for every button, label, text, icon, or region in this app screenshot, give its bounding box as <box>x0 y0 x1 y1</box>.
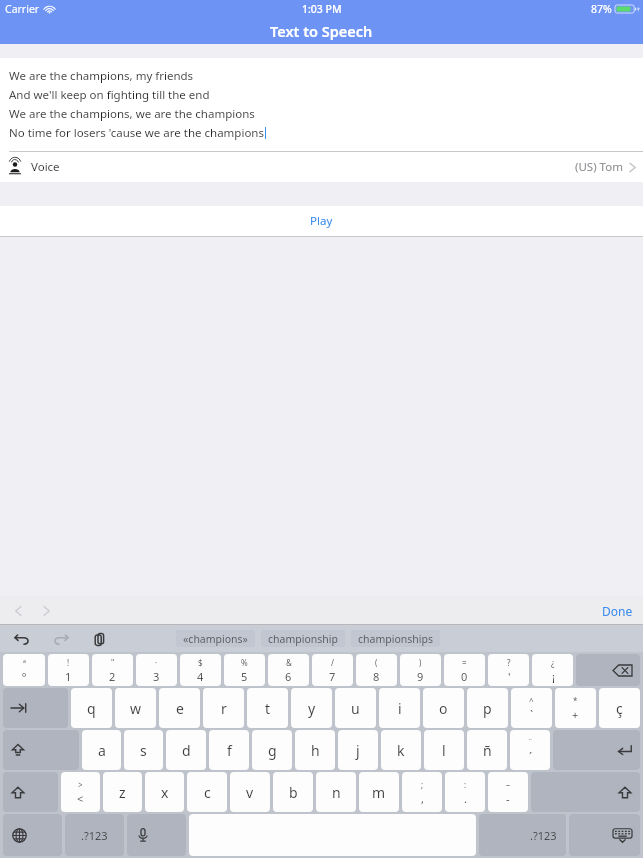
button[interactable]: > <box>61 772 100 812</box>
button[interactable]: c <box>187 772 227 812</box>
button[interactable]: ^ <box>511 688 552 728</box>
staticText: 4 <box>197 669 204 684</box>
button[interactable]: q <box>71 688 112 728</box>
button[interactable]: Shift <box>3 772 58 812</box>
button[interactable]: o <box>423 688 464 728</box>
staticText: ` <box>530 707 534 722</box>
button[interactable]: Paste <box>90 629 110 649</box>
button[interactable]: j <box>338 730 378 770</box>
button[interactable]: ¨ <box>510 730 550 770</box>
button[interactable]: ç <box>599 688 640 728</box>
button[interactable]: / <box>312 654 353 686</box>
button[interactable]: w <box>115 688 156 728</box>
button[interactable]: ; <box>402 772 442 812</box>
staticText: 1:03 PM <box>302 2 342 16</box>
staticText: ; <box>421 779 424 790</box>
staticText: .?123 <box>530 828 557 843</box>
button[interactable]: % <box>224 654 265 686</box>
other: Caps lock <box>3 730 79 770</box>
button[interactable]: v <box>230 772 270 812</box>
staticText: ( <box>375 657 378 668</box>
button[interactable]: k <box>381 730 421 770</box>
other: Tab <box>3 688 68 728</box>
button[interactable]: y <box>291 688 332 728</box>
staticText: + <box>572 707 579 722</box>
button[interactable]: b <box>273 772 313 812</box>
button[interactable]: Play <box>0 206 643 236</box>
staticText: ? <box>507 657 511 668</box>
button[interactable]: s <box>124 730 163 770</box>
button[interactable]: ! <box>48 654 89 686</box>
button[interactable]: Dictate <box>127 814 186 856</box>
button[interactable]: l <box>424 730 464 770</box>
staticText: < <box>77 791 84 806</box>
button[interactable]: Tab <box>3 688 68 728</box>
button[interactable]: ( <box>356 654 397 686</box>
button[interactable]: e <box>159 688 200 728</box>
button[interactable]: Undo <box>12 629 32 649</box>
button[interactable]: g <box>252 730 292 770</box>
other: Backspace <box>576 654 640 686</box>
staticText: z <box>119 783 126 802</box>
button[interactable]: Voice <box>0 152 643 182</box>
button[interactable]: ) <box>400 654 441 686</box>
button[interactable]: Return <box>553 730 640 770</box>
button[interactable]: ¿ <box>532 654 573 686</box>
button[interactable]: Next keyboard <box>3 814 62 856</box>
button[interactable]: & <box>268 654 309 686</box>
button[interactable]: a <box>82 730 121 770</box>
button[interactable]: Hide keyboard <box>569 814 640 856</box>
button[interactable]: ? <box>488 654 529 686</box>
button[interactable]: d <box>166 730 206 770</box>
button[interactable]: Previous field <box>6 599 30 623</box>
staticText: a <box>98 741 106 760</box>
button[interactable]: x <box>145 772 184 812</box>
button[interactable]: * <box>555 688 596 728</box>
other: Hide keyboard <box>569 814 640 856</box>
staticText: And we'll keep on fighting till the end <box>9 87 210 103</box>
button[interactable]: : <box>445 772 485 812</box>
staticText: 9 <box>417 669 424 684</box>
button[interactable]: p <box>467 688 508 728</box>
button[interactable]: m <box>359 772 399 812</box>
button[interactable]: .?123 <box>479 814 566 856</box>
button[interactable]: r <box>203 688 244 728</box>
button[interactable]: Redo <box>51 629 71 649</box>
button[interactable]: " <box>92 654 133 686</box>
button[interactable]: Next field <box>34 599 58 623</box>
button[interactable]: – <box>488 772 528 812</box>
staticText: ^ <box>529 695 534 706</box>
button[interactable]: ñ <box>467 730 507 770</box>
staticText: - <box>506 791 510 806</box>
staticText: > <box>78 779 83 790</box>
button[interactable]: · <box>136 654 177 686</box>
button[interactable]: championships <box>351 630 440 647</box>
staticText: f <box>227 741 232 760</box>
button[interactable]: Caps lock <box>3 730 79 770</box>
staticText: Play <box>310 213 333 229</box>
button[interactable]: «champions» <box>176 630 255 647</box>
staticText: .?123 <box>81 828 108 843</box>
button[interactable]: u <box>335 688 376 728</box>
button[interactable]: Backspace <box>576 654 640 686</box>
button[interactable]: h <box>295 730 335 770</box>
button[interactable]: i <box>379 688 420 728</box>
other: Return <box>553 730 640 770</box>
staticText: : <box>464 779 467 790</box>
button[interactable]: championship <box>261 630 345 647</box>
button[interactable]: = <box>444 654 485 686</box>
button[interactable]: $ <box>180 654 221 686</box>
button[interactable]: n <box>316 772 356 812</box>
staticText: d <box>182 741 191 760</box>
button[interactable]: .?123 <box>65 814 124 856</box>
staticText: 5 <box>241 669 248 684</box>
staticText: Text to Speech <box>270 21 373 41</box>
button[interactable]: t <box>247 688 288 728</box>
button[interactable]: Done <box>592 599 643 623</box>
button[interactable]: f <box>209 730 249 770</box>
button[interactable]: z <box>103 772 142 812</box>
button[interactable]: ª <box>3 654 45 686</box>
button[interactable]: Shift <box>531 772 640 812</box>
staticText: Done <box>602 603 633 619</box>
